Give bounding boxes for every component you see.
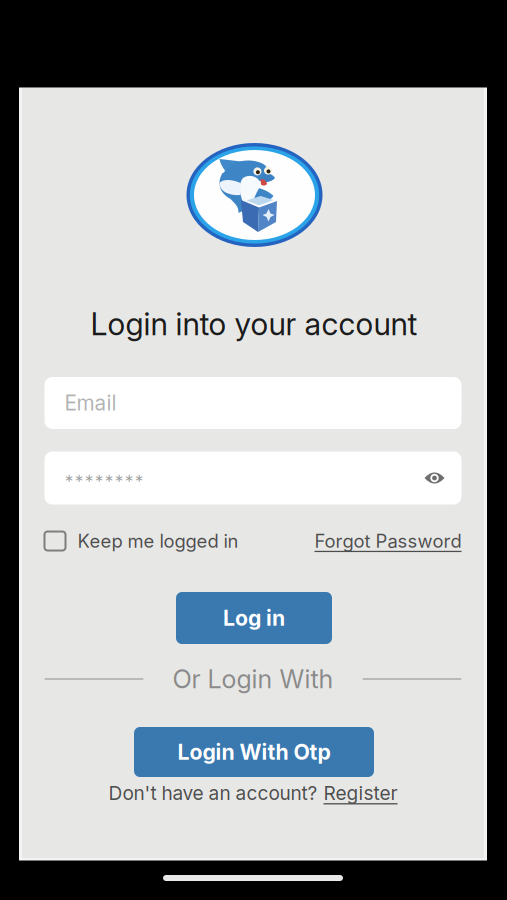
staticText: Email <box>64 390 116 416</box>
button[interactable]: Show password <box>417 460 451 496</box>
staticText: Don't have an account? <box>108 781 317 805</box>
staticText: Keep me logged in <box>77 530 238 552</box>
staticText: Register <box>323 781 397 805</box>
button[interactable]: Keep me logged in <box>44 530 238 552</box>
button[interactable]: Log in <box>176 592 332 644</box>
staticText: ∗∗∗∗∗∗∗∗ <box>64 471 144 485</box>
staticText: Forgot Password <box>314 530 461 552</box>
staticText: Log in <box>223 605 285 631</box>
button[interactable]: Forgot Password <box>314 530 461 552</box>
button[interactable]: Register <box>323 781 397 805</box>
staticText: Login With Otp <box>177 739 330 765</box>
button[interactable]: Login With Otp <box>134 727 374 777</box>
staticText: Or Login With <box>172 664 333 694</box>
staticText: Login into your account <box>90 305 417 342</box>
